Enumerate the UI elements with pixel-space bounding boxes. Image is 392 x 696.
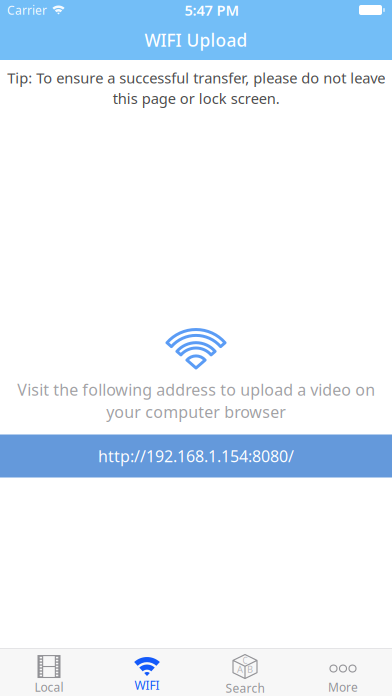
staticText: More bbox=[328, 679, 358, 695]
staticText: C bbox=[242, 655, 247, 666]
staticText: http://192.168.1.154:8080/ bbox=[98, 445, 294, 467]
staticText: 5:47 PM bbox=[184, 0, 239, 20]
staticText: Visit the following address to upload a … bbox=[17, 379, 375, 422]
button[interactable]: WIFI bbox=[98, 649, 196, 696]
staticText: WIFI Upload bbox=[144, 28, 247, 51]
staticText: Search bbox=[225, 680, 264, 696]
button[interactable]: Local bbox=[0, 649, 98, 696]
staticText: WIFI bbox=[134, 677, 159, 693]
button[interactable]: More bbox=[294, 649, 392, 696]
staticText: A bbox=[237, 663, 243, 675]
staticText: B bbox=[247, 663, 253, 675]
button[interactable]: C bbox=[196, 649, 294, 696]
staticText: Tip: To ensure a successful transfer, pl… bbox=[7, 68, 385, 108]
staticText: Carrier bbox=[7, 2, 47, 18]
staticText: Local bbox=[34, 679, 63, 695]
